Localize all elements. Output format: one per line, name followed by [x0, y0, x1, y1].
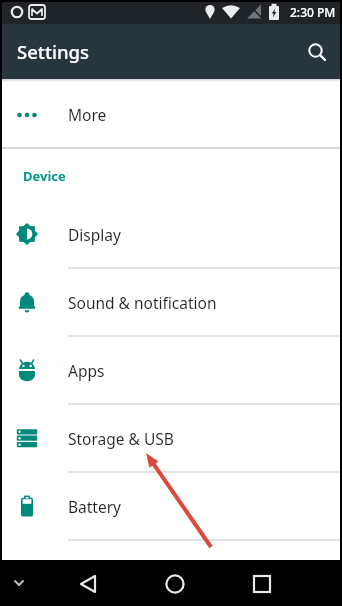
staticText: Display: [68, 224, 121, 245]
button[interactable]: Apps: [0, 337, 342, 403]
button[interactable]: More: [0, 82, 342, 147]
staticText: Sound & notification: [68, 292, 217, 313]
button[interactable]: Battery: [0, 473, 342, 539]
staticText: 2:30 PM: [290, 4, 336, 20]
button[interactable]: [70, 563, 110, 603]
staticText: Storage & USB: [68, 428, 174, 449]
button[interactable]: Storage & USB: [0, 405, 342, 471]
button[interactable]: Display: [0, 201, 342, 267]
button[interactable]: [238, 563, 278, 603]
staticText: Device: [23, 167, 66, 185]
button[interactable]: [151, 563, 191, 603]
staticText: Apps: [68, 360, 105, 381]
staticText: Battery: [68, 496, 122, 517]
staticText: Settings: [17, 39, 90, 64]
staticText: More: [68, 104, 107, 125]
button[interactable]: Sound & notification: [0, 269, 342, 335]
button[interactable]: [297, 32, 337, 72]
